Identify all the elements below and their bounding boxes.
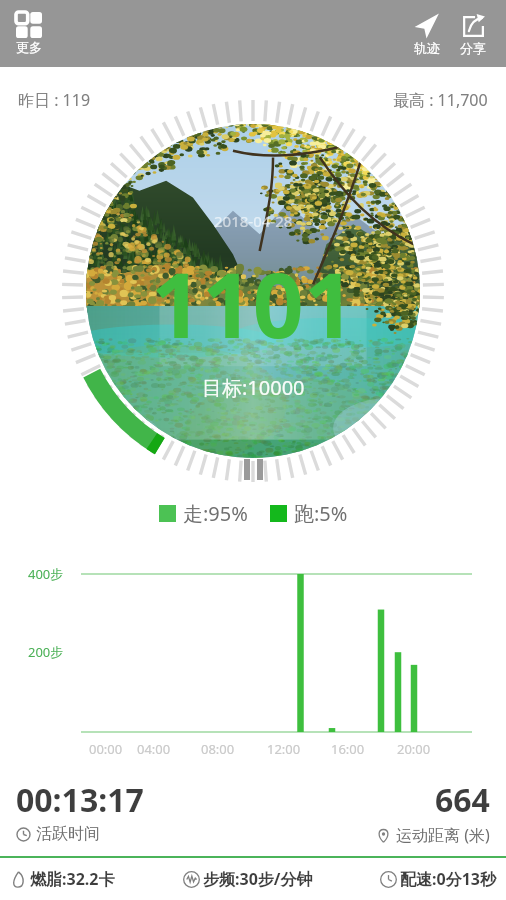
staticText: 08:00 bbox=[201, 740, 235, 758]
staticText: 2018-04-28 bbox=[214, 211, 293, 231]
button[interactable]: 轨迹 bbox=[403, 10, 450, 58]
staticText: 00:13:17 bbox=[16, 778, 144, 822]
button[interactable]: 燃脂:32.2卡 bbox=[8, 868, 117, 890]
staticText: 运动距离 (米) bbox=[396, 824, 490, 846]
button[interactable]: 分享 bbox=[450, 11, 496, 58]
staticText: 活跃时间 bbox=[36, 824, 100, 844]
staticText: 昨日 : 119 bbox=[18, 89, 91, 111]
staticText: 最高 : 11,700 bbox=[393, 89, 488, 111]
staticText: 16:00 bbox=[331, 740, 365, 758]
button[interactable]: 配速:0分13秒 bbox=[378, 868, 498, 890]
staticText: 1101 bbox=[151, 243, 355, 364]
staticText: 轨迹 bbox=[414, 40, 440, 56]
staticText: 20:00 bbox=[397, 740, 431, 758]
staticText: 步频:30步/分钟 bbox=[203, 868, 313, 890]
staticText: 分享 bbox=[460, 40, 486, 56]
staticText: 00:00 bbox=[89, 740, 123, 758]
staticText: 燃脂:32.2卡 bbox=[30, 868, 115, 890]
staticText: 跑:5% bbox=[294, 500, 348, 527]
button[interactable]: Pause bbox=[240, 455, 267, 484]
staticText: 200步 bbox=[28, 643, 64, 661]
staticText: 配速:0分13秒 bbox=[400, 868, 496, 890]
staticText: 12:00 bbox=[267, 740, 301, 758]
staticText: 目标:10000 bbox=[202, 374, 305, 401]
button[interactable]: 步频:30步/分钟 bbox=[181, 868, 315, 890]
staticText: 04:00 bbox=[137, 740, 171, 758]
staticText: 400步 bbox=[28, 565, 64, 583]
staticText: 走:95% bbox=[183, 500, 248, 527]
button[interactable]: 更多 bbox=[12, 10, 46, 57]
staticText: 更多 bbox=[16, 39, 42, 55]
staticText: 664 bbox=[435, 778, 490, 822]
